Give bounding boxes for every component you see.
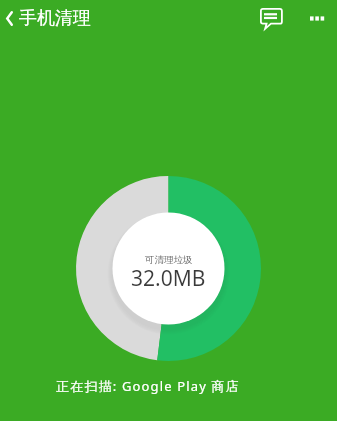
staticText: 32.0MB	[131, 264, 206, 293]
button[interactable]: Messages	[257, 5, 283, 31]
button[interactable]: More options	[305, 6, 329, 30]
button[interactable]: Junk scan progress, 32.0MB cleanable	[76, 176, 261, 361]
staticText: 可清理垃圾	[145, 254, 193, 266]
button[interactable]: Back	[0, 2, 19, 34]
staticText: 正在扫描: Google Play 商店	[56, 377, 240, 395]
staticText: 手机清理	[19, 7, 91, 30]
